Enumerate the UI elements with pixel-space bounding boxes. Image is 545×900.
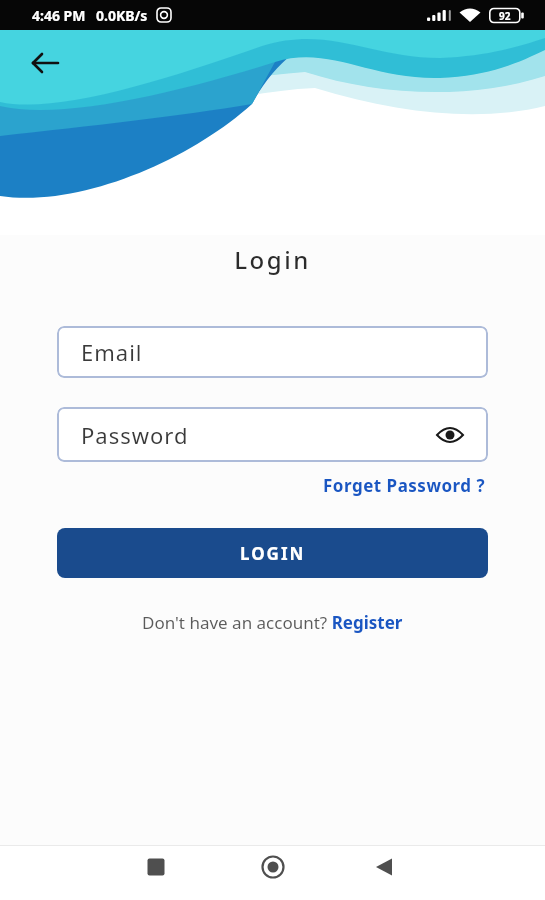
staticText: Don't have an account? Register <box>142 611 403 634</box>
staticText: LOGIN <box>240 542 306 565</box>
button[interactable]: Password <box>57 407 488 462</box>
staticText: Login <box>0 243 545 276</box>
staticText: 0.0KB/s <box>96 6 148 25</box>
staticText: Email <box>81 337 143 367</box>
button[interactable] <box>436 425 464 445</box>
button[interactable] <box>375 858 393 876</box>
button[interactable]: Email <box>57 326 488 378</box>
staticText: 4:46 PM <box>32 6 86 25</box>
staticText: Password <box>81 420 189 450</box>
button[interactable]: LOGIN <box>57 528 488 578</box>
staticText: 92 <box>499 9 511 23</box>
button[interactable] <box>28 48 62 82</box>
button[interactable] <box>261 855 285 879</box>
button[interactable]: Forget Password ? <box>323 474 486 497</box>
button[interactable]: Don't have an account? Register <box>0 611 545 634</box>
button[interactable] <box>147 858 165 876</box>
